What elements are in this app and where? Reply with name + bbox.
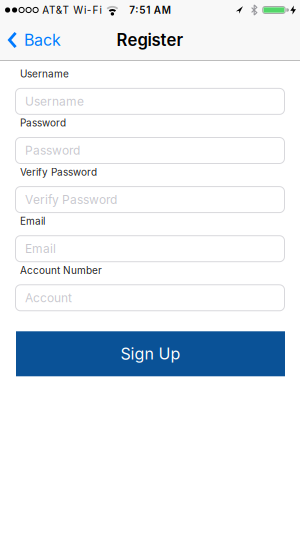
textField[interactable]: Verify Password [15,186,285,213]
staticText: Username [20,68,69,80]
staticText: Email [20,215,45,227]
staticText: Sign Up [120,344,180,363]
staticText: Username [25,94,84,109]
staticText: 7:51 [129,4,150,16]
staticText: Password [20,117,66,129]
staticText: Email [25,241,56,256]
staticText: AM [154,4,171,16]
staticText: Account Number [20,264,102,276]
staticText: Verify Password [25,192,117,207]
staticText: Password [25,143,80,158]
button[interactable]: Back [8,30,61,50]
textField[interactable]: Password [15,137,285,164]
staticText: Register [116,30,183,50]
staticText: Verify Password [20,166,97,178]
staticText: AT&T Wi-Fi [42,4,101,16]
textField[interactable]: Username [15,88,285,115]
textField[interactable]: Account [15,284,285,311]
textField[interactable]: Email [15,235,285,262]
staticText: Back [24,30,61,50]
staticText: Account [25,290,72,305]
button[interactable]: Sign Up [16,331,285,376]
